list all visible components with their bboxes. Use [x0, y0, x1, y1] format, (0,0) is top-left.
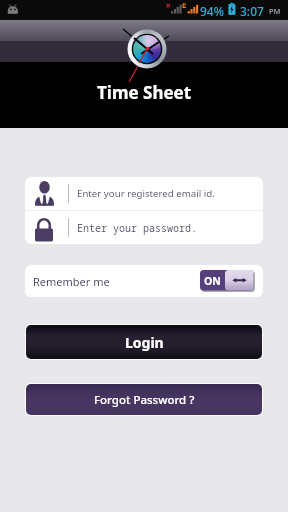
staticText: Forgot Password ? — [94, 392, 195, 408]
button[interactable]: Remember me toggle, on — [200, 270, 255, 292]
staticText: Time Sheet — [97, 81, 192, 104]
staticText: Enter your registered email id. — [77, 187, 215, 200]
button[interactable]: Forgot Password ? — [26, 384, 262, 415]
button[interactable]: Enter your registered email id. — [25, 177, 263, 210]
button[interactable]: Login — [26, 325, 262, 359]
staticText: ON — [204, 274, 221, 288]
button[interactable]: Remember me — [25, 265, 263, 297]
staticText: PM — [269, 6, 281, 16]
staticText: Enter your password. — [77, 221, 197, 235]
staticText: Remember me — [33, 274, 110, 289]
staticText: 94% — [200, 3, 224, 19]
staticText: Login — [125, 333, 164, 352]
staticText: 3:07 — [240, 3, 264, 19]
button[interactable]: Enter your password. — [25, 211, 263, 244]
